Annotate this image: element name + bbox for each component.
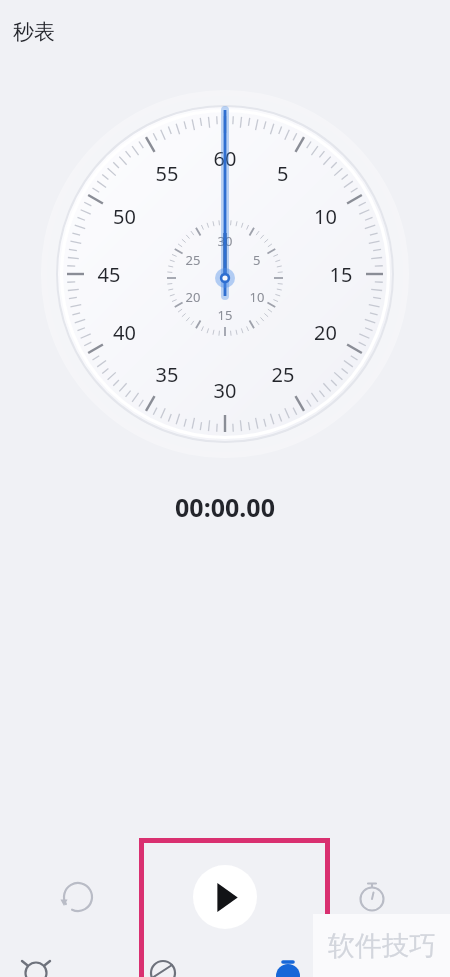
- staticText: 软件技巧: [328, 929, 436, 963]
- button[interactable]: Reset: [48, 867, 108, 927]
- button[interactable]: Stopwatch: [258, 950, 318, 977]
- staticText: 秒表: [13, 19, 55, 45]
- button[interactable]: World clock: [133, 950, 193, 977]
- staticText: 00:00.00: [0, 490, 450, 524]
- button[interactable]: Start: [193, 865, 257, 929]
- button[interactable]: Alarm: [6, 950, 66, 977]
- button[interactable]: Lap: [342, 867, 402, 927]
